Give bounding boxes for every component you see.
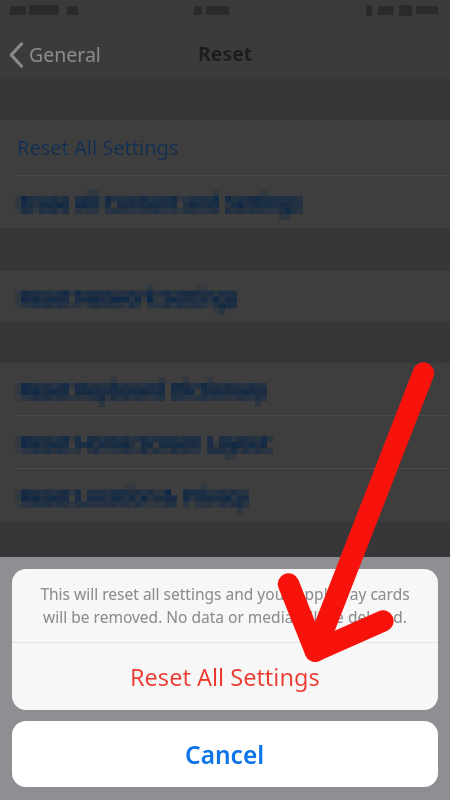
- staticText: General: [29, 41, 101, 68]
- button[interactable]: [0, 176, 450, 228]
- button[interactable]: [0, 469, 450, 522]
- staticText: Cancel: [185, 738, 265, 771]
- button[interactable]: [0, 416, 450, 468]
- staticText: Reset All Settings: [17, 134, 179, 161]
- staticText: Reset: [198, 40, 253, 67]
- button[interactable]: [0, 363, 450, 415]
- button[interactable]: Reset All Settings: [0, 120, 450, 175]
- button[interactable]: [0, 271, 450, 322]
- button[interactable]: Reset All Settings: [12, 643, 438, 710]
- staticText: This will reset all settings and your Ap…: [37, 583, 413, 628]
- staticText: Reset All Settings: [130, 661, 320, 693]
- button[interactable]: Back to General: [0, 35, 113, 74]
- button[interactable]: Cancel: [12, 721, 438, 787]
